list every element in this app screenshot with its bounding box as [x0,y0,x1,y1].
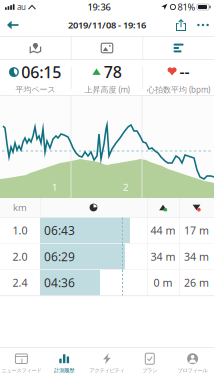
staticText: -- [180,61,190,82]
button[interactable]: アクティビティ [86,347,128,380]
button[interactable]: プラン [128,347,171,380]
staticText: km [13,201,27,214]
staticText: プロフィール [178,367,208,374]
staticText: 06:15 [21,61,61,83]
staticText: 2019/11/08 - 19:16 [68,19,146,31]
staticText: 平均ペース [15,85,55,94]
staticText: アクティビティ [89,367,124,374]
staticText: 04:36 [44,275,75,291]
button[interactable]: Chart [143,36,214,60]
staticText: 1 [52,181,57,193]
staticText: 78 [104,61,122,82]
staticText: 06:43 [44,222,75,238]
staticText: 34 m [184,249,209,264]
staticText: 19:36 [87,1,110,13]
staticText: 2.0 [12,249,27,264]
staticText: ニュースフィード [1,367,41,374]
button[interactable]: Share [170,15,192,35]
staticText: 26 m [184,276,209,290]
staticText: 2.4 [12,276,27,290]
button[interactable]: プロフィール [171,347,214,380]
button[interactable]: Back [0,14,24,35]
staticText: au [17,2,26,12]
staticText: 1.0 [12,223,27,238]
button[interactable]: ニュースフィード [0,347,43,380]
staticText: 81% [177,1,195,13]
button[interactable]: 計測履歴 [43,347,86,380]
staticText: プラン [142,367,157,374]
staticText: 計測履歴 [54,367,74,374]
staticText: 心拍数平均 (bpm) [147,84,210,95]
staticText: 44 m [150,223,175,238]
button[interactable]: Map [0,36,71,60]
staticText: 17 m [184,223,209,238]
staticText: 上昇高度 (m) [84,84,129,95]
staticText: 2 [123,181,128,193]
staticText: 06:29 [44,249,75,264]
staticText: 0 m [153,276,172,290]
staticText: 34 m [150,249,175,264]
button[interactable]: Photos [72,36,142,60]
button[interactable]: More [192,19,214,31]
